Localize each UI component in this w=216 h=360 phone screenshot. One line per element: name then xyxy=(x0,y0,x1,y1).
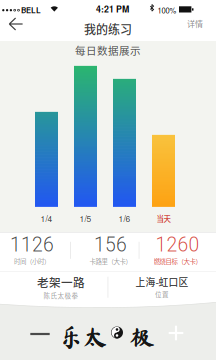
staticText: 1/5 xyxy=(79,212,91,224)
staticText: 老架一路 xyxy=(37,273,85,290)
staticText: 位置 xyxy=(155,289,169,299)
button[interactable]: 乐太 xyxy=(58,325,154,349)
button[interactable]: 详情 xyxy=(178,14,212,32)
staticText: 极 xyxy=(130,325,154,349)
staticText: 详情 xyxy=(187,18,203,29)
button[interactable]: 老架一路 xyxy=(0,272,108,301)
staticText: 1126 xyxy=(10,233,54,256)
staticText: 时间（小时） xyxy=(14,257,50,266)
staticText: BELL xyxy=(21,5,41,16)
staticText: 100% xyxy=(157,5,176,16)
staticText: 我的练习 xyxy=(84,20,132,38)
staticText: 燃烧目标（大卡） xyxy=(153,257,201,266)
staticText: 陈氏太极拳 xyxy=(43,291,78,300)
staticText: 乐太 xyxy=(59,325,107,349)
staticText: 156 xyxy=(94,233,127,256)
button[interactable] xyxy=(162,320,190,346)
staticText: 每日数据展示 xyxy=(75,43,141,58)
button[interactable] xyxy=(24,321,56,347)
staticText: 4:21 PM xyxy=(96,3,129,15)
staticText: 1260 xyxy=(155,233,199,256)
button[interactable]: 上海-虹口区 xyxy=(108,272,216,301)
staticText: 1/4 xyxy=(40,212,52,224)
button[interactable] xyxy=(2,16,32,38)
staticText: 当天 xyxy=(156,213,170,224)
staticText: 1/6 xyxy=(118,212,130,224)
staticText: 乐太 xyxy=(59,325,107,349)
staticText: 卡路里（大卡） xyxy=(89,257,131,266)
staticText: 上海-虹口区 xyxy=(135,275,188,289)
staticText: 极 xyxy=(130,325,154,349)
